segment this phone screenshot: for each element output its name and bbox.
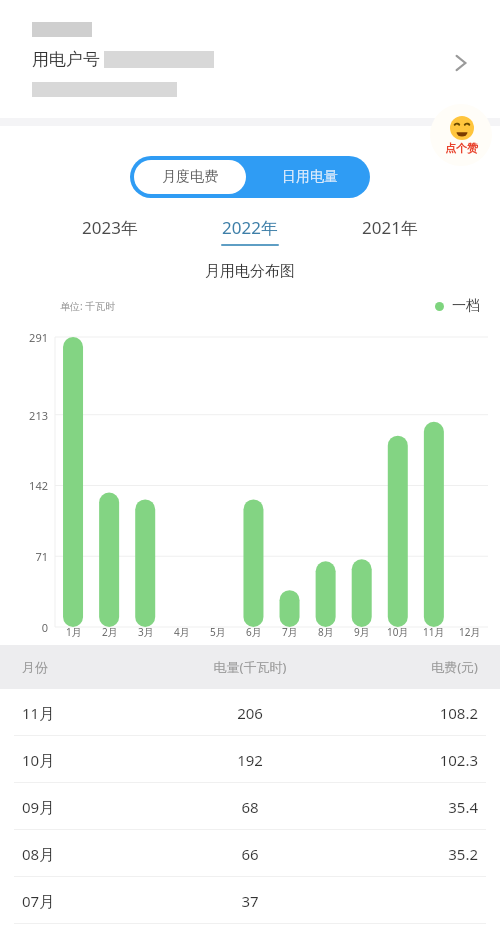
staticText: 2月	[102, 625, 118, 639]
staticText: 电费(元)	[340, 658, 478, 676]
staticText: 192	[160, 750, 340, 770]
staticText: 12月	[459, 625, 481, 639]
staticText: 35.2	[340, 844, 478, 864]
staticText: 11月	[423, 625, 445, 639]
staticText: 电量(千瓦时)	[160, 658, 340, 676]
staticText: 09月	[22, 797, 160, 817]
staticText: 点个赞	[445, 141, 478, 155]
staticText: 11月	[22, 703, 160, 723]
staticText: 8月	[318, 625, 334, 639]
button[interactable]: 2022年	[180, 216, 320, 246]
staticText: 月份	[22, 659, 160, 675]
button[interactable]: 2023年	[40, 216, 180, 246]
staticText: 10月	[387, 625, 409, 639]
staticText: 35.4	[340, 797, 478, 817]
staticText: 108.2	[340, 703, 478, 723]
staticText: 用电户号	[32, 49, 100, 70]
staticText: 月用电分布图	[0, 262, 500, 281]
staticText: 10月	[22, 750, 160, 770]
button[interactable]: 月度电费	[134, 160, 246, 194]
staticText: 291	[29, 330, 48, 345]
staticText: 3月	[138, 625, 154, 639]
staticText: 日用电量	[282, 168, 338, 186]
button[interactable]: 07月	[0, 877, 500, 924]
staticText: 71	[35, 549, 48, 564]
staticText: 213	[29, 408, 48, 423]
button[interactable]: 09月	[0, 783, 500, 830]
button[interactable]: 用电户号	[10, 8, 490, 118]
staticText: 206	[160, 703, 340, 723]
staticText: 6月	[246, 625, 262, 639]
staticText: 66	[160, 844, 340, 864]
staticText: 2023年	[82, 216, 138, 239]
staticText: 单位: 千瓦时	[60, 299, 116, 313]
staticText: 1月	[66, 625, 82, 639]
staticText: 07月	[22, 891, 160, 911]
staticText: 一档	[452, 297, 480, 315]
button[interactable]: 10月	[0, 736, 500, 783]
button[interactable]: 日用电量	[250, 156, 370, 198]
staticText: 08月	[22, 844, 160, 864]
staticText: 142	[29, 478, 48, 493]
staticText: 4月	[174, 625, 190, 639]
button[interactable]: Give a like	[430, 104, 492, 166]
staticText: 月度电费	[162, 168, 218, 186]
button[interactable]: 11月	[0, 689, 500, 736]
staticText: 5月	[210, 625, 226, 639]
staticText: 102.3	[340, 750, 478, 770]
button[interactable]: 08月	[0, 830, 500, 877]
staticText: 7月	[282, 625, 298, 639]
staticText: 68	[160, 797, 340, 817]
staticText: 2022年	[222, 216, 278, 239]
staticText: 2021年	[362, 216, 418, 239]
staticText: 37	[160, 891, 340, 911]
other: Account details	[450, 52, 472, 74]
button[interactable]: 2021年	[320, 216, 460, 246]
staticText: 9月	[354, 625, 370, 639]
staticText: 0	[41, 620, 48, 635]
